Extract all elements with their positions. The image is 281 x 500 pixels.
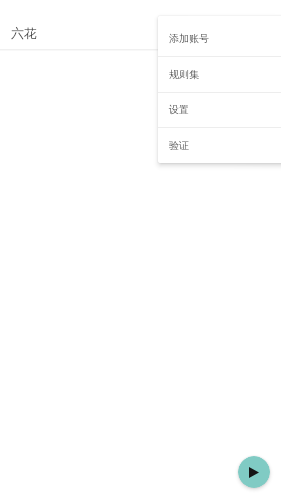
- staticText: 六花: [11, 25, 37, 41]
- staticText: 规则集: [169, 68, 199, 81]
- button[interactable]: Start: [238, 456, 270, 488]
- button[interactable]: 验证: [158, 127, 281, 163]
- button[interactable]: 规则集: [158, 56, 281, 92]
- staticText: 添加账号: [169, 32, 209, 45]
- button[interactable]: 设置: [158, 92, 281, 127]
- button[interactable]: 添加账号: [158, 20, 281, 56]
- staticText: 设置: [169, 103, 189, 116]
- staticText: 验证: [169, 139, 189, 152]
